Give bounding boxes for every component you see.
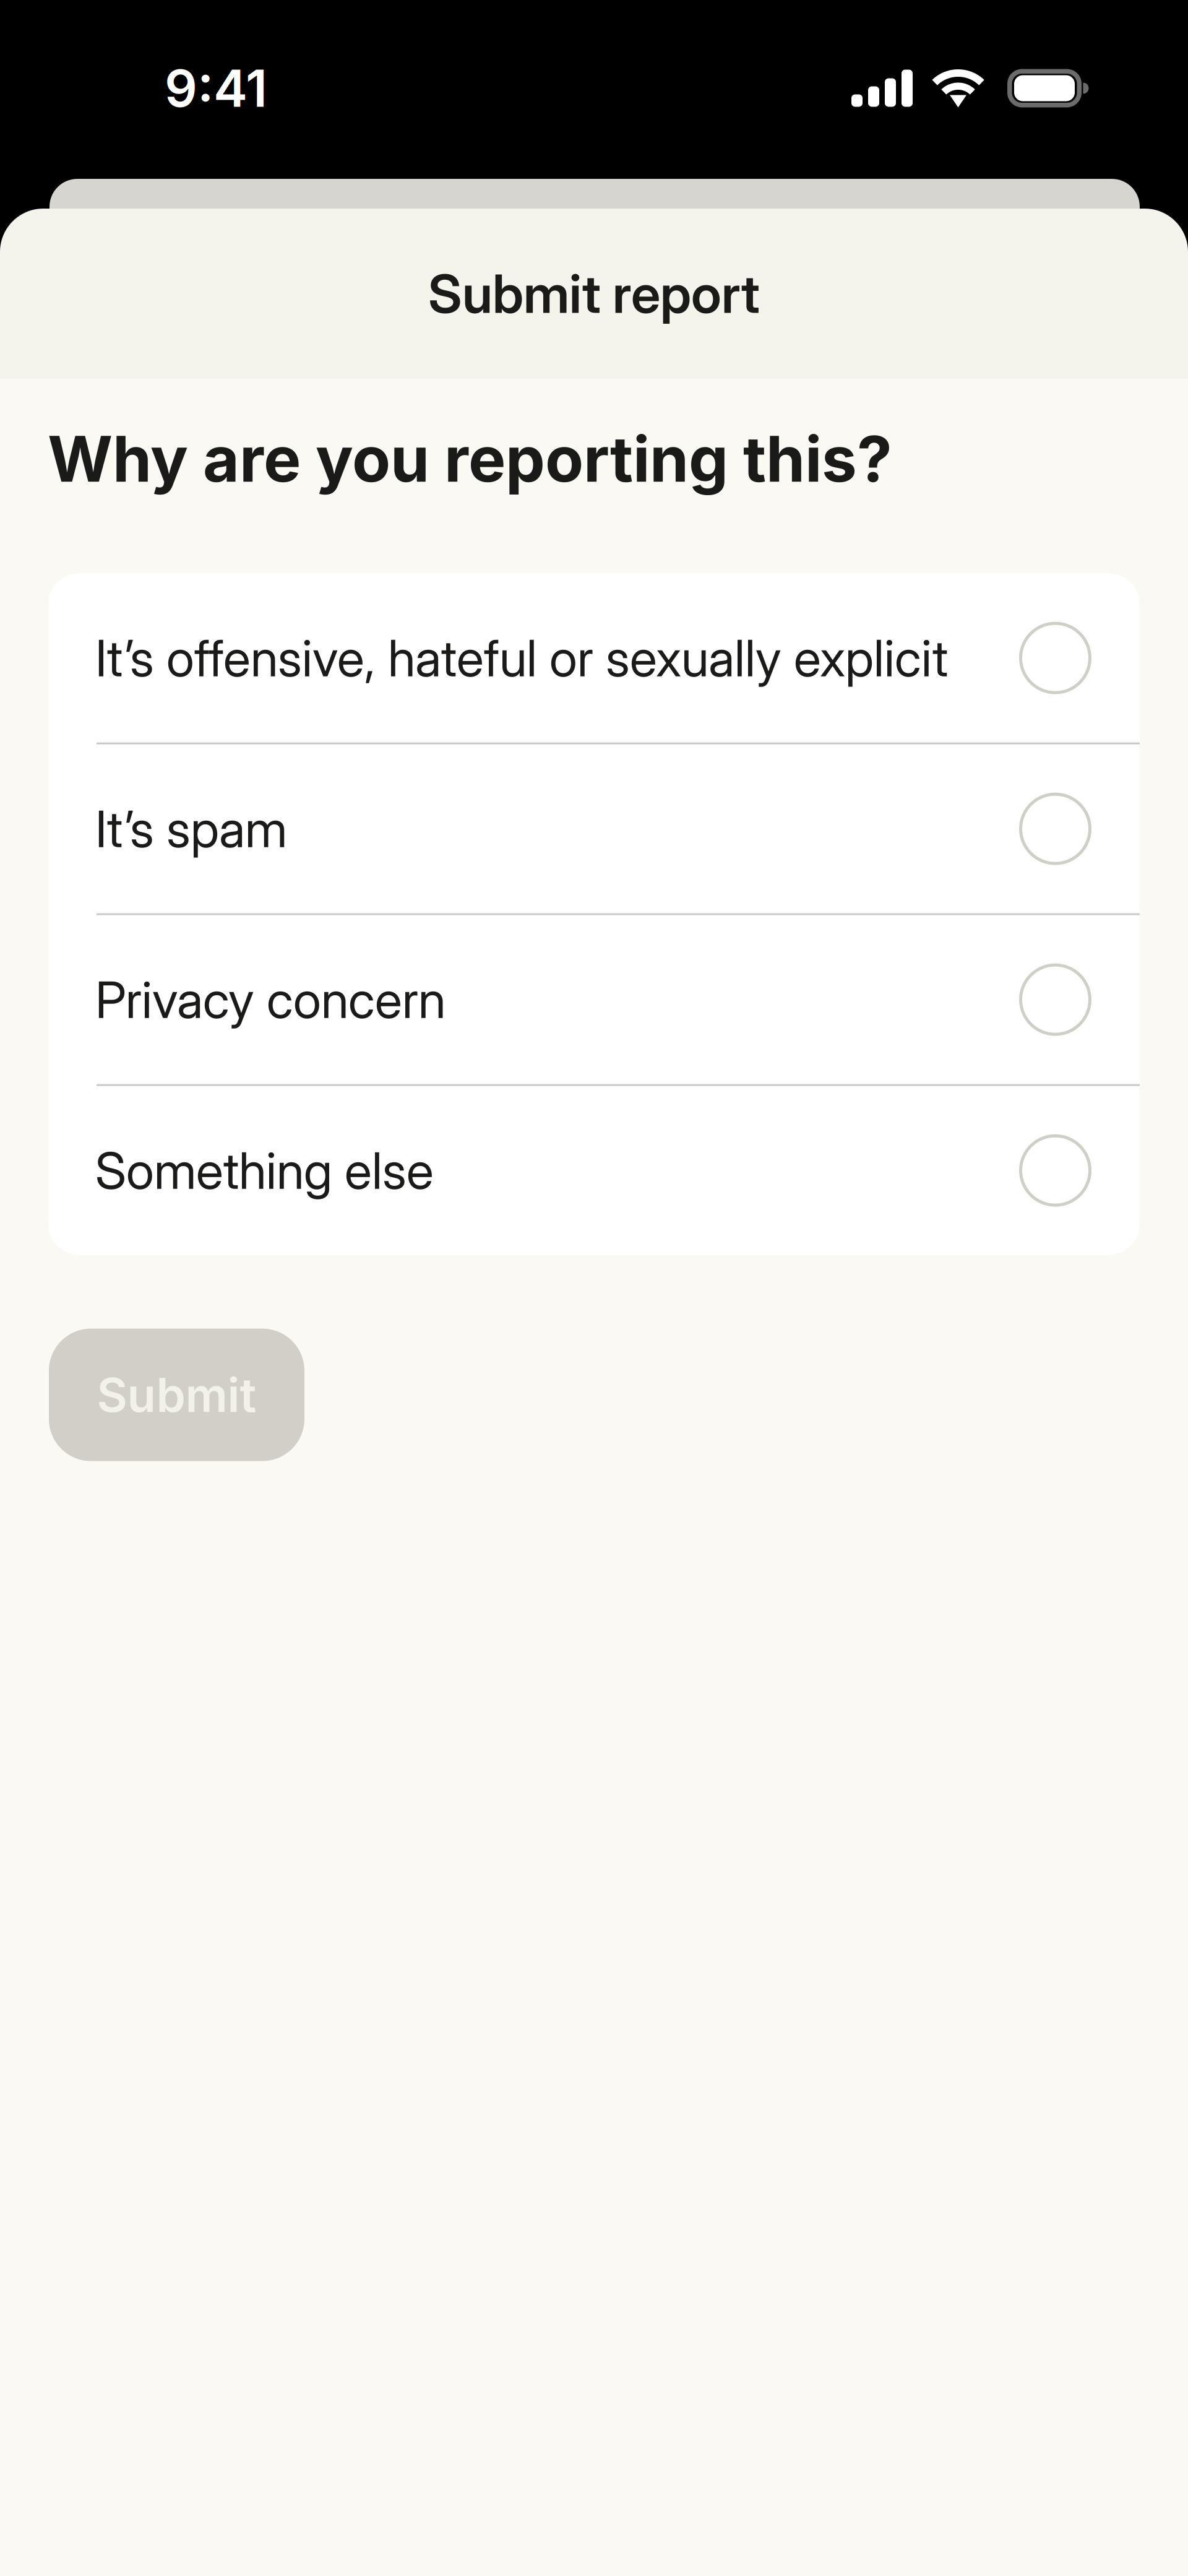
staticText: It’s spam: [95, 798, 287, 859]
staticText: Something else: [95, 1140, 434, 1201]
staticText: 9:41: [165, 57, 267, 119]
button[interactable]: Submit: [49, 1329, 304, 1461]
staticText: Submit report: [428, 262, 760, 326]
button[interactable]: It’s spam: [48, 744, 1140, 913]
button[interactable]: It’s offensive, hateful or sexually expl…: [48, 574, 1140, 742]
staticText: Privacy concern: [95, 969, 445, 1030]
staticText: Submit: [97, 1366, 256, 1423]
button[interactable]: Something else: [48, 1086, 1140, 1255]
staticText: Why are you reporting this?: [48, 421, 892, 497]
button[interactable]: Privacy concern: [48, 915, 1140, 1084]
staticText: It’s offensive, hateful or sexually expl…: [95, 628, 948, 688]
